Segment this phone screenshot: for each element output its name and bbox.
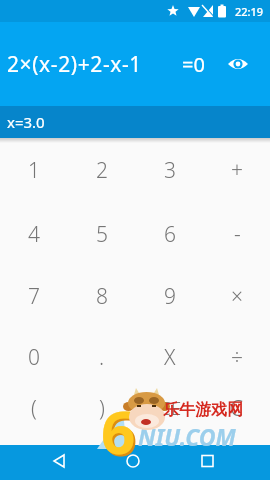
staticText: 0 (28, 343, 40, 372)
button[interactable]: 2 (68, 138, 136, 203)
staticText: 2×(x-2)+2-x-1 (7, 50, 142, 79)
staticText: CE (159, 395, 182, 421)
staticText: 7 (28, 282, 40, 311)
button[interactable]: + (204, 138, 270, 203)
staticText: 6 (164, 220, 176, 249)
staticText: - (234, 220, 241, 249)
staticText: + (231, 156, 243, 185)
staticText: X (164, 343, 176, 372)
button[interactable]: . (68, 327, 136, 387)
button[interactable] (0, 445, 90, 480)
button[interactable]: - (204, 203, 270, 265)
button[interactable]: ( (0, 387, 68, 429)
button[interactable]: 1 (0, 138, 68, 203)
button[interactable] (180, 445, 270, 480)
staticText: 6 (101, 390, 136, 472)
button[interactable]: 4 (0, 203, 68, 265)
staticText: 5 (96, 220, 108, 249)
staticText: 4 (28, 220, 40, 249)
button[interactable]: 6 (136, 203, 204, 265)
staticText: ) (99, 394, 105, 423)
staticText: 2 (96, 156, 108, 185)
button[interactable]: 5 (68, 203, 136, 265)
button[interactable]: ÷ (204, 327, 270, 387)
staticText: x=3.0 (7, 112, 45, 132)
staticText: 8 (96, 282, 108, 311)
staticText: 1 (28, 156, 40, 185)
staticText: 乐牛游戏网 (163, 400, 243, 420)
staticText: . (99, 343, 105, 372)
staticText: 6 (103, 392, 138, 474)
staticText: 22:19 (235, 4, 264, 19)
staticText: ÷ (231, 343, 243, 372)
button[interactable]: ) (68, 387, 136, 429)
button[interactable]: 9 (136, 265, 204, 327)
staticText: C (230, 394, 244, 423)
button[interactable]: × (204, 265, 270, 327)
button[interactable]: 3 (136, 138, 204, 203)
button[interactable]: 7 (0, 265, 68, 327)
staticText: NIU.COM (138, 421, 236, 452)
button[interactable]: 8 (68, 265, 136, 327)
button[interactable]: C (204, 387, 270, 429)
button[interactable]: 0 (0, 327, 68, 387)
staticText: 3 (164, 156, 176, 185)
button[interactable]: CE (136, 387, 204, 429)
staticText: =0 (182, 51, 205, 78)
button[interactable] (90, 445, 180, 480)
button[interactable]: X (136, 327, 204, 387)
staticText: × (231, 282, 243, 311)
button[interactable] (226, 52, 250, 76)
staticText: ( (31, 394, 37, 423)
staticText: 9 (164, 282, 176, 311)
